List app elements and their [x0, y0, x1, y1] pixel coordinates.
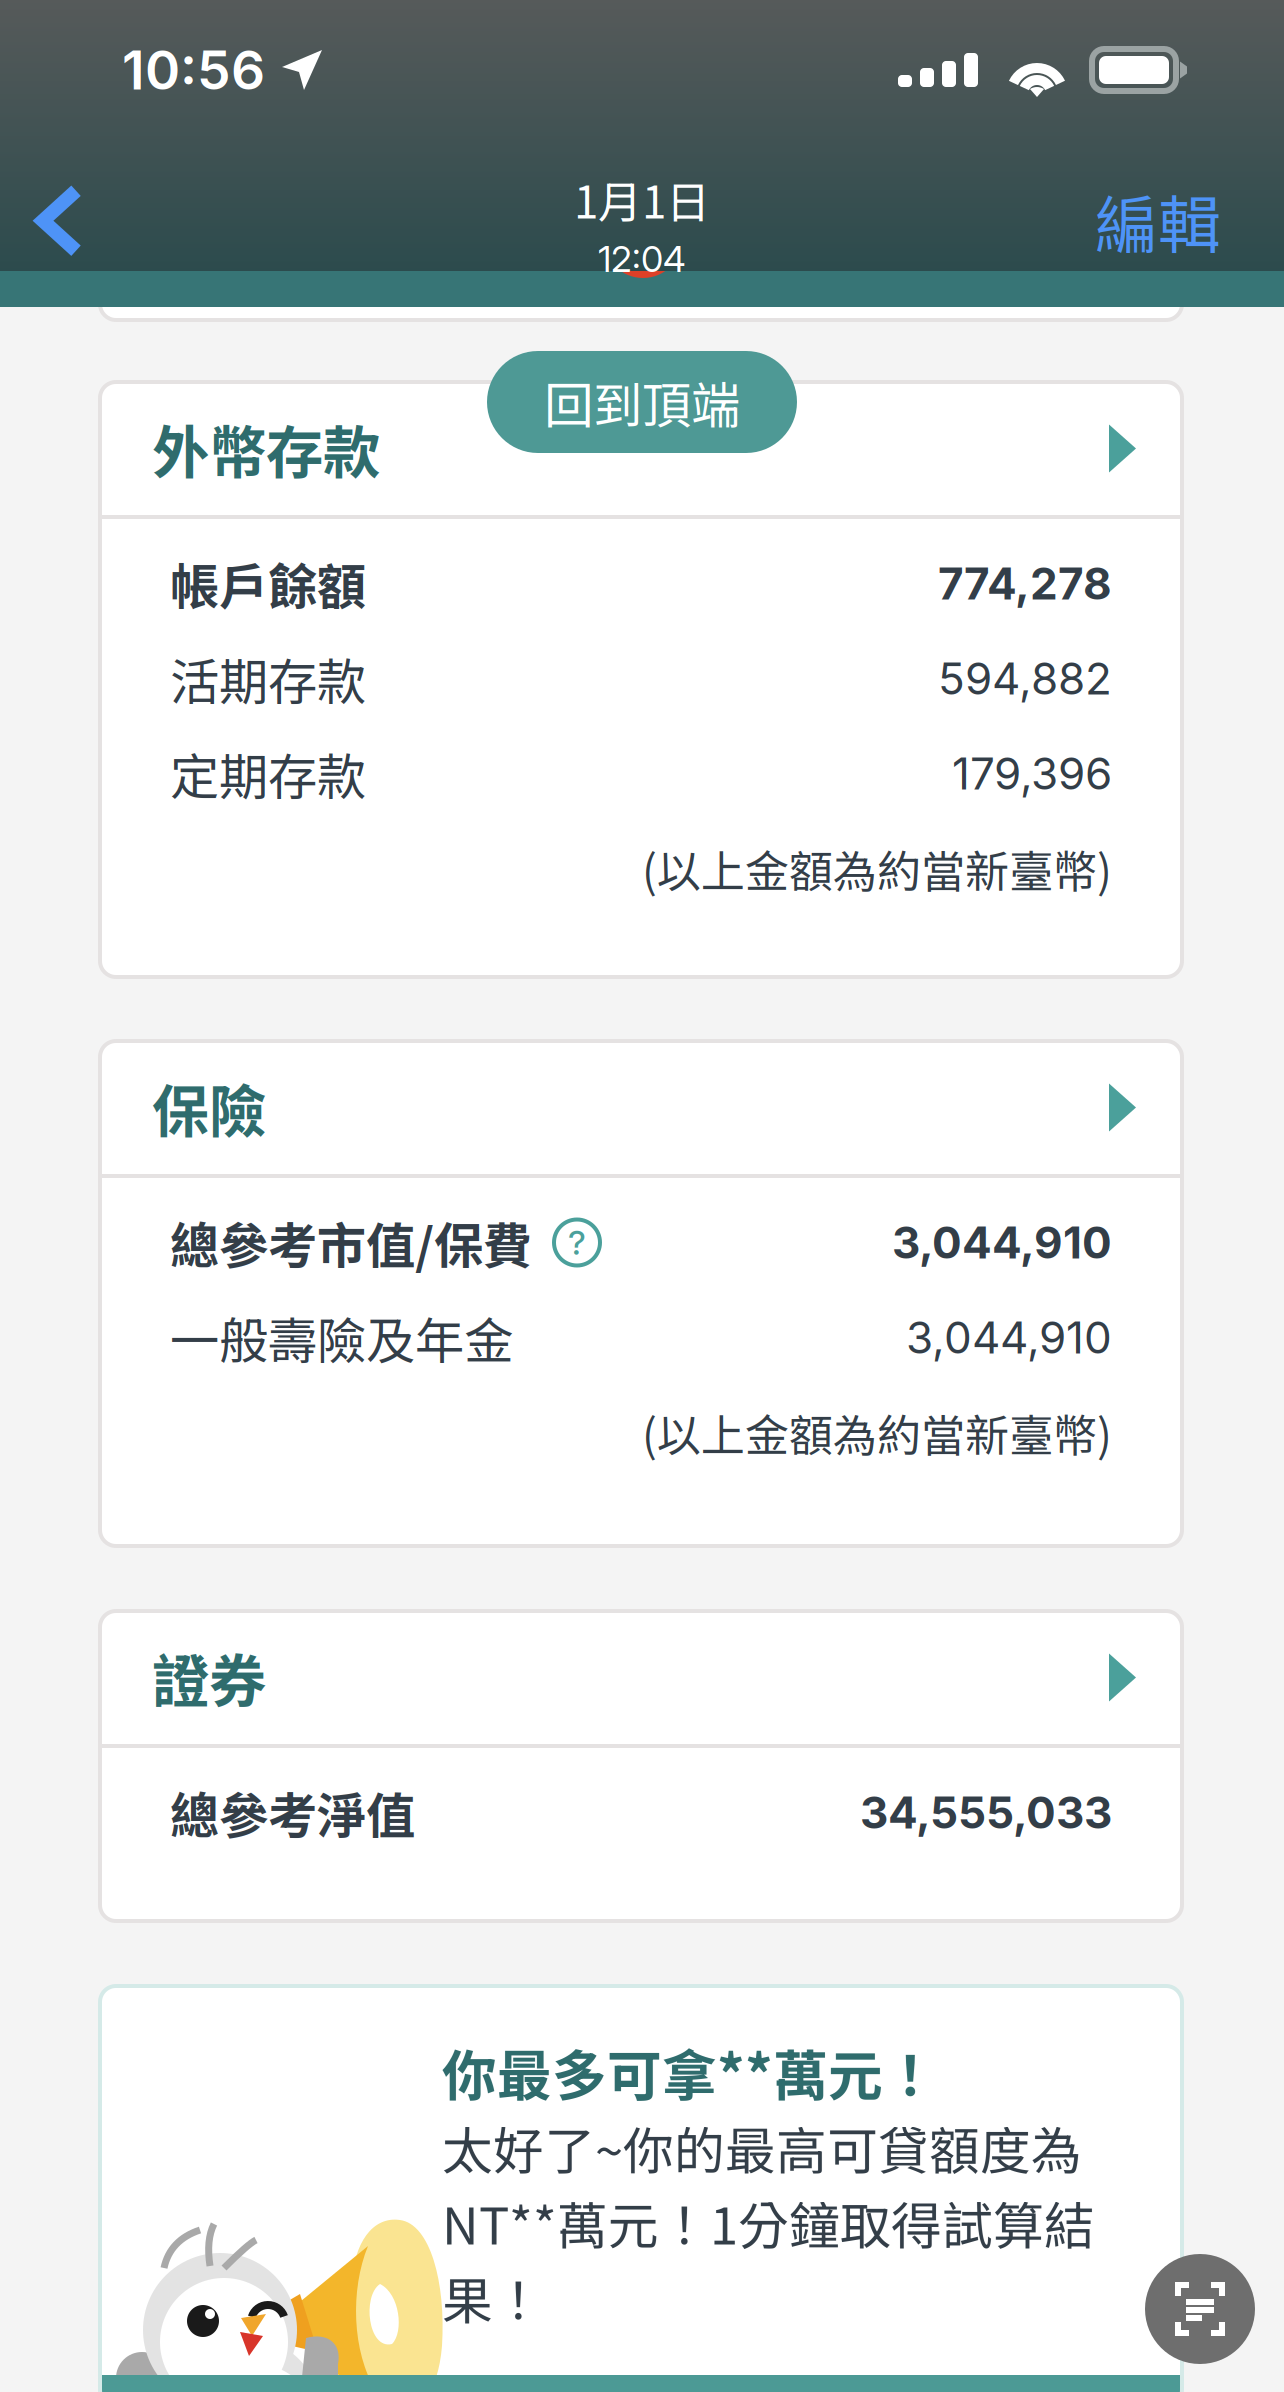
staticText: 34,555,033: [860, 1786, 1112, 1839]
button[interactable]: 你最多可拿**萬元！: [100, 1986, 1182, 2392]
staticText: (以上金額為約當新臺幣): [642, 1401, 1112, 1464]
staticText: ?: [568, 1222, 586, 1263]
staticText: 3,044,910: [892, 1216, 1112, 1269]
button[interactable]: 證券: [100, 1611, 1182, 1744]
button[interactable]: 回到頂端: [487, 351, 797, 453]
staticText: 179,396: [952, 747, 1112, 800]
staticText: 帳戶餘額: [170, 548, 366, 619]
staticText: 3,044,910: [906, 1311, 1112, 1364]
staticText: 果！: [442, 2261, 544, 2334]
staticText: 10:56: [122, 38, 265, 102]
staticText: 回到頂端: [544, 366, 740, 438]
staticText: 594,882: [938, 652, 1112, 705]
staticText: 外幣存款: [152, 407, 380, 490]
staticText: 編輯: [1095, 175, 1221, 266]
staticText: 你最多可拿**萬元！: [442, 2032, 938, 2112]
staticText: 一般壽險及年金: [170, 1302, 513, 1373]
staticText: (以上金額為約當新臺幣): [642, 837, 1112, 900]
button[interactable]: Scan: [1145, 2254, 1255, 2364]
staticText: 定期存款: [170, 738, 366, 809]
staticText: 太好了~你的最高可貸額度為: [442, 2111, 1082, 2184]
staticText: 12:04: [598, 237, 686, 281]
staticText: 總參考淨值: [170, 1777, 415, 1848]
staticText: 774,278: [938, 557, 1112, 610]
staticText: 活期存款: [170, 643, 366, 714]
staticText: 保險: [152, 1066, 266, 1149]
button[interactable]: 保險: [100, 1041, 1182, 1174]
button[interactable]: Back: [36, 187, 84, 255]
button[interactable]: 編輯: [1095, 175, 1221, 266]
staticText: 證券: [152, 1636, 266, 1719]
staticText: 1月1日: [574, 167, 710, 231]
staticText: 總參考市值/保費: [170, 1207, 532, 1278]
staticText: NT**萬元！1分鐘取得試算結: [442, 2186, 1095, 2259]
button[interactable]: 外幣存款: [100, 382, 1182, 515]
